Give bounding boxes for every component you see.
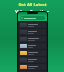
button[interactable]: Search — [20, 16, 45, 20]
button[interactable]: More options — [19, 64, 46, 70]
button[interactable]: More options — [19, 57, 46, 63]
other: Search — [21, 17, 23, 19]
button[interactable]: More options — [19, 50, 46, 56]
button[interactable]: More options — [19, 36, 46, 42]
button[interactable]: More options — [19, 29, 46, 35]
staticText: Videos Together — [15, 9, 49, 15]
button[interactable]: More options — [19, 43, 46, 49]
button[interactable]: More options — [19, 22, 46, 28]
staticText: Get All Latest — [18, 2, 47, 8]
